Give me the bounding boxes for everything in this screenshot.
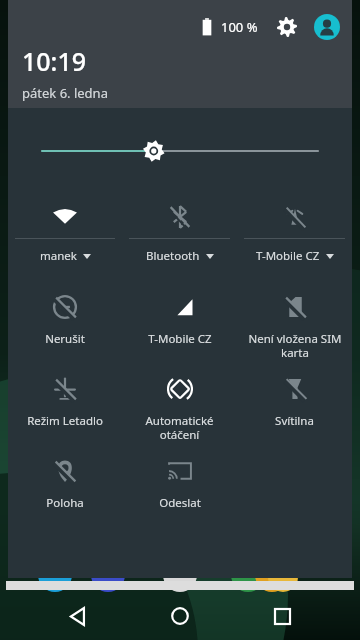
button[interactable]: Settings <box>274 14 300 40</box>
staticText: pátek 6. ledna <box>22 84 108 102</box>
button[interactable]: Odeslat <box>122 446 237 524</box>
button[interactable]: T-Mobile CZ <box>122 282 237 364</box>
staticText: Režim Letadlo <box>27 413 103 429</box>
button[interactable]: Režim Letadlo <box>8 364 122 442</box>
staticText: Odeslat <box>159 495 201 511</box>
staticText: manek <box>40 248 77 264</box>
button[interactable]: Není vložena SIM karta <box>237 282 352 364</box>
staticText: 100 % <box>221 18 258 36</box>
button[interactable]: T-Mobile CZ <box>237 194 352 272</box>
staticText: Poloha <box>46 495 84 511</box>
button[interactable]: User profile <box>314 14 340 40</box>
staticText: Bluetooth <box>146 248 200 264</box>
staticText: Nerušit <box>45 331 85 347</box>
staticText: 10:19 <box>22 44 87 78</box>
button[interactable]: Bluetooth <box>122 194 237 272</box>
button[interactable]: Home <box>156 592 204 640</box>
button[interactable]: Automatické otáčení <box>122 364 237 442</box>
button[interactable]: Recents <box>258 592 306 640</box>
staticText: Není vložena SIM karta <box>248 331 342 360</box>
staticText: T-Mobile CZ <box>256 248 320 264</box>
staticText: T-Mobile CZ <box>148 331 212 347</box>
button[interactable]: Brightness <box>8 108 352 194</box>
button[interactable]: Nerušit <box>8 282 122 364</box>
staticText: Svítilna <box>275 413 314 429</box>
button[interactable]: Back <box>54 592 102 640</box>
button[interactable]: manek <box>8 194 122 272</box>
button[interactable]: Svítilna <box>237 364 352 442</box>
staticText: Automatické otáčení <box>128 413 231 442</box>
button[interactable]: Poloha <box>8 446 122 524</box>
